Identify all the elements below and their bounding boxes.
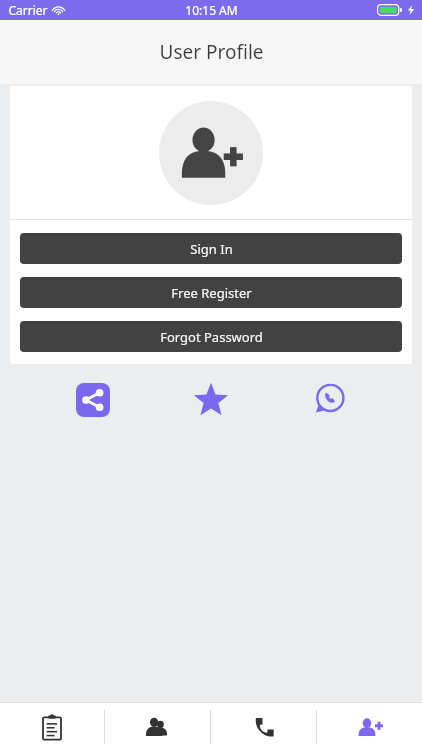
button[interactable]: Forgot Password — [20, 321, 402, 352]
staticText: Sign In — [190, 240, 233, 258]
button[interactable]: WhatsApp — [309, 380, 349, 420]
button[interactable]: Rate — [191, 380, 231, 420]
button[interactable]: Add contact — [317, 703, 422, 750]
staticText: Free Register — [171, 284, 252, 302]
button[interactable]: Calls — [211, 703, 316, 750]
button[interactable]: Contacts — [105, 703, 210, 750]
button[interactable]: Notes — [0, 703, 104, 750]
button[interactable]: Free Register — [20, 277, 402, 308]
staticText: Forgot Password — [160, 328, 263, 346]
staticText: User Profile — [159, 39, 264, 65]
button[interactable]: Profile photo — [159, 101, 263, 205]
button[interactable]: Share — [76, 383, 110, 417]
button[interactable]: Sign In — [20, 233, 402, 264]
staticText: Carrier — [8, 2, 48, 18]
staticText: 10:15 AM — [185, 2, 238, 18]
